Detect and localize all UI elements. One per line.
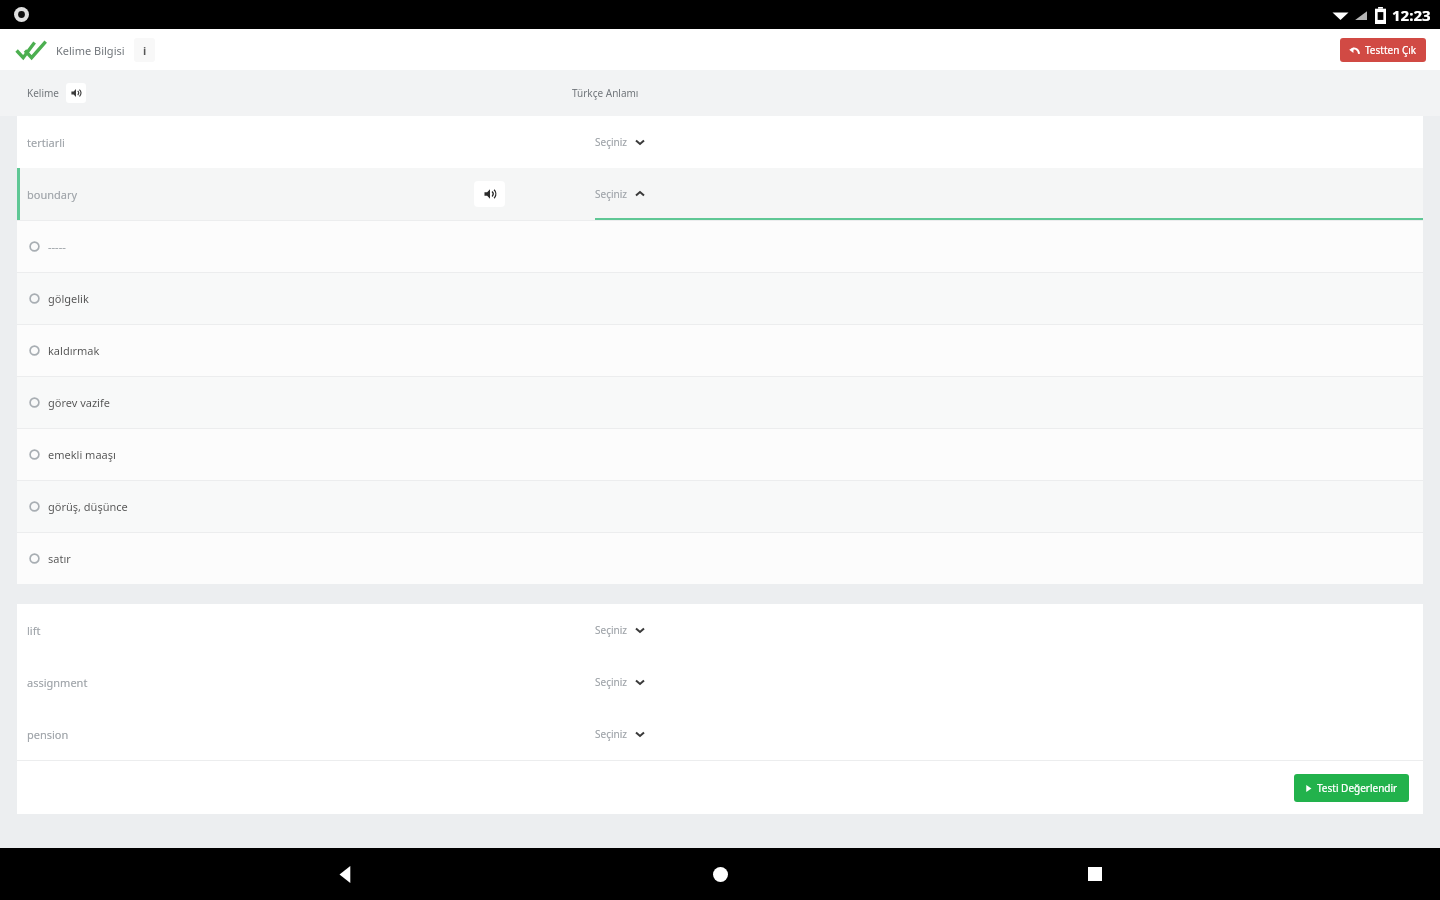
staticText: 12:23	[1392, 5, 1431, 25]
button[interactable]: lift	[17, 604, 1423, 656]
staticText: görev vazife	[48, 395, 110, 410]
button[interactable]: satır	[17, 533, 1423, 584]
staticText: lift	[27, 623, 41, 638]
staticText: satır	[48, 551, 71, 566]
button[interactable]: Ana ekran	[690, 848, 750, 900]
staticText: görüş, düşünce	[48, 499, 128, 514]
staticText: -----	[48, 239, 66, 254]
button[interactable]: Son kullanılanlar	[1065, 848, 1125, 900]
button[interactable]: Testi Değerlendir	[1294, 774, 1409, 802]
button[interactable]: Bilgi	[134, 38, 155, 62]
button[interactable]: assignment	[17, 656, 1423, 708]
staticText: Seçiniz	[595, 135, 627, 149]
button[interactable]: Testten Çık	[1340, 38, 1426, 62]
staticText: emekli maaşı	[48, 447, 116, 462]
staticText: kaldırmak	[48, 343, 100, 358]
staticText: Seçiniz	[595, 187, 627, 201]
staticText: i	[143, 43, 147, 58]
button[interactable]: gölgelik	[17, 273, 1423, 324]
staticText: tertiarli	[27, 135, 65, 150]
staticText: Seçiniz	[595, 675, 627, 689]
staticText: boundary	[27, 187, 78, 202]
button[interactable]: görev vazife	[17, 377, 1423, 428]
button[interactable]: pension	[17, 708, 1423, 760]
staticText: Seçiniz	[595, 623, 627, 637]
staticText: Kelime Bilgisi	[56, 43, 125, 58]
staticText: Kelime	[27, 86, 59, 100]
staticText: pension	[27, 727, 69, 742]
button[interactable]: boundary	[17, 168, 1423, 220]
button[interactable]: Sesli oku	[66, 83, 86, 103]
staticText: assignment	[27, 675, 88, 690]
staticText: Seçiniz	[595, 727, 627, 741]
staticText: gölgelik	[48, 291, 89, 306]
button[interactable]: emekli maaşı	[17, 429, 1423, 480]
button[interactable]: kaldırmak	[17, 325, 1423, 376]
staticText: Testten Çık	[1365, 43, 1417, 57]
button[interactable]: görüş, düşünce	[17, 481, 1423, 532]
staticText: Testi Değerlendir	[1317, 781, 1398, 795]
button[interactable]: tertiarli	[17, 116, 1423, 168]
staticText: Türkçe Anlamı	[572, 86, 639, 100]
button[interactable]: Telaffuz	[474, 181, 505, 207]
button[interactable]: Geri	[315, 848, 375, 900]
